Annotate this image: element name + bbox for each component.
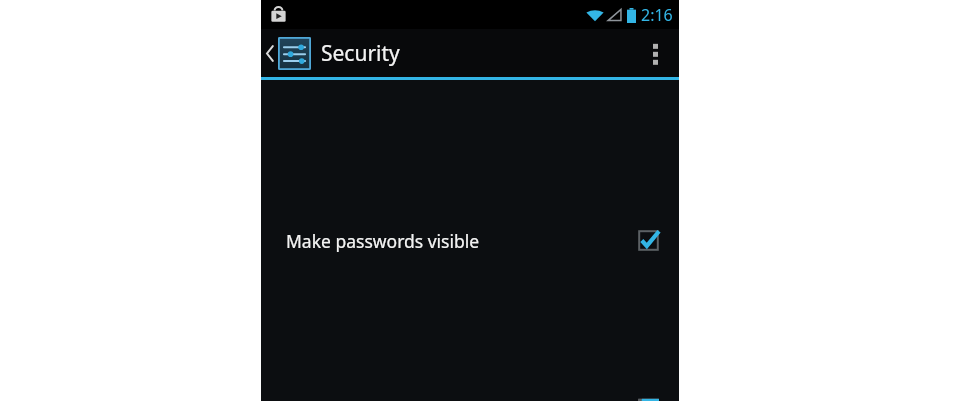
button[interactable]: More options bbox=[637, 29, 673, 77]
button[interactable]: Navigate up bbox=[261, 29, 311, 77]
staticText: Make passwords visible bbox=[286, 229, 480, 253]
button[interactable]: Make passwords visible bbox=[617, 80, 679, 401]
staticText: 2:16 bbox=[641, 4, 673, 26]
staticText: Security bbox=[321, 39, 400, 68]
button[interactable]: Make passwords visible bbox=[261, 80, 679, 401]
